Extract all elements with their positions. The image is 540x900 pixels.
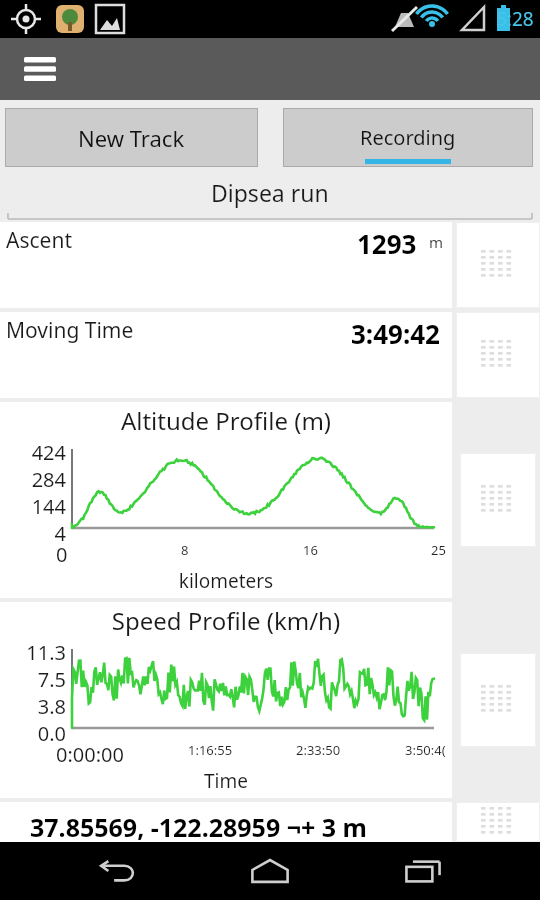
button[interactable]: 37.85569, -122.28959 ¬+ 3 m — [0, 802, 452, 842]
staticText: 3:50:4( — [405, 741, 446, 759]
button[interactable]: Reorder item — [456, 222, 540, 308]
staticText: Dipsea run — [211, 177, 329, 208]
button[interactable]: Back — [81, 846, 153, 896]
staticText: Altitude Profile (m) — [0, 404, 452, 437]
staticText: 7.5 — [37, 666, 66, 693]
staticText: Recording — [360, 124, 456, 151]
staticText: 424 — [31, 439, 66, 466]
staticText: 3:49:42 — [351, 316, 440, 351]
button[interactable]: Reorder item — [456, 312, 540, 398]
button[interactable]: New Track — [5, 108, 258, 167]
staticText: 37.85569, -122.28959 ¬+ 3 m — [30, 810, 367, 842]
staticText: 144 — [31, 493, 66, 520]
staticText: 1293 — [357, 226, 417, 261]
button[interactable]: Reorder item — [460, 453, 536, 547]
staticText: 25 — [431, 541, 446, 559]
button[interactable]: Reorder item — [460, 653, 536, 747]
staticText: 4 — [54, 520, 66, 542]
staticText: 3.8 — [37, 693, 66, 720]
staticText: Speed Profile (km/h) — [0, 604, 452, 637]
staticText: 8 — [181, 541, 189, 559]
staticText: 1:16:55 — [188, 741, 233, 759]
staticText: 284 — [31, 466, 66, 493]
staticText: 0.0 — [37, 720, 66, 742]
button[interactable]: Recording — [283, 108, 533, 167]
staticText: Ascent — [6, 226, 357, 255]
staticText: New Track — [78, 123, 185, 153]
staticText: 11.3 — [26, 639, 66, 666]
staticText: Moving Time — [6, 316, 351, 345]
staticText: 16 — [303, 541, 318, 559]
staticText: Time — [0, 768, 452, 794]
staticText: kilometers — [0, 568, 452, 594]
staticText: 0:00:00 — [56, 741, 124, 768]
button[interactable]: Recent apps — [387, 846, 459, 896]
button[interactable]: Moving Time — [0, 312, 452, 398]
staticText: 5:28 — [496, 6, 534, 32]
button[interactable]: Open navigation menu — [18, 47, 62, 91]
button[interactable]: Home — [234, 846, 306, 896]
staticText: 2:33:50 — [296, 741, 341, 759]
button[interactable]: Altitude Profile (m) — [0, 402, 452, 598]
button[interactable]: Reorder item — [456, 802, 540, 842]
staticText: m — [429, 232, 444, 252]
button[interactable]: Speed Profile (km/h) — [0, 602, 452, 798]
button[interactable]: Ascent — [0, 222, 452, 308]
staticText: 0 — [56, 541, 68, 568]
